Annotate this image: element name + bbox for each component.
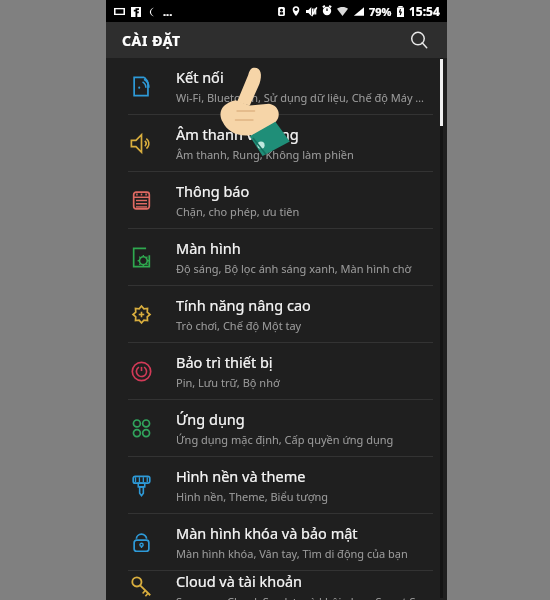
staticText: Âm thanh và rung [176,124,299,144]
button[interactable]: Màn hình [106,229,447,285]
button[interactable]: Kết nối [106,58,447,114]
staticText: Bảo trì thiết bị [176,352,273,372]
staticText: Samsung Cloud, Sao lưu và khôi phục, Sma… [176,594,429,600]
staticText: Thông báo [176,181,250,201]
staticText: Ứng dụng mặc định, Cấp quyền ứng dụng [176,432,394,447]
staticText: Màn hình [176,238,241,258]
button[interactable]: Thông báo [106,172,447,228]
staticText: 15:54 [409,3,440,19]
staticText: ... [163,4,173,19]
button[interactable]: Âm thanh và rung [106,115,447,171]
staticText: Pin, Lưu trữ, Bộ nhớ [176,375,280,390]
staticText: Âm thanh, Rung, Không làm phiền [176,147,354,162]
button[interactable]: Bảo trì thiết bị [106,343,447,399]
button[interactable]: Search [405,26,433,54]
staticText: Tính năng nâng cao [176,295,311,315]
staticText: 79% [369,4,392,19]
button[interactable]: Ứng dụng [106,400,447,456]
staticText: Màn hình khóa và bảo mật [176,523,358,543]
staticText: Hình nền, Theme, Biểu tượng [176,489,329,504]
staticText: Trò chơi, Chế độ Một tay [176,318,302,333]
button[interactable]: Hình nền và theme [106,457,447,513]
staticText: CÀI ĐẶT [122,31,181,50]
staticText: Chặn, cho phép, ưu tiên [176,204,300,219]
staticText: Màn hình khóa, Vân tay, Tìm di động của … [176,546,408,561]
button[interactable]: Cloud và tài khoản [106,571,447,600]
staticText: Hình nền và theme [176,466,306,486]
staticText: Cloud và tài khoản [176,571,303,591]
staticText: Ứng dụng [176,409,245,429]
button[interactable]: Tính năng nâng cao [106,286,447,342]
staticText: Wi-Fi, Bluetooth, Sử dụng dữ liệu, Chế đ… [176,90,429,105]
staticText: Kết nối [176,67,224,87]
button[interactable]: Màn hình khóa và bảo mật [106,514,447,570]
staticText: Độ sáng, Bộ lọc ánh sáng xanh, Màn hình … [176,261,412,276]
